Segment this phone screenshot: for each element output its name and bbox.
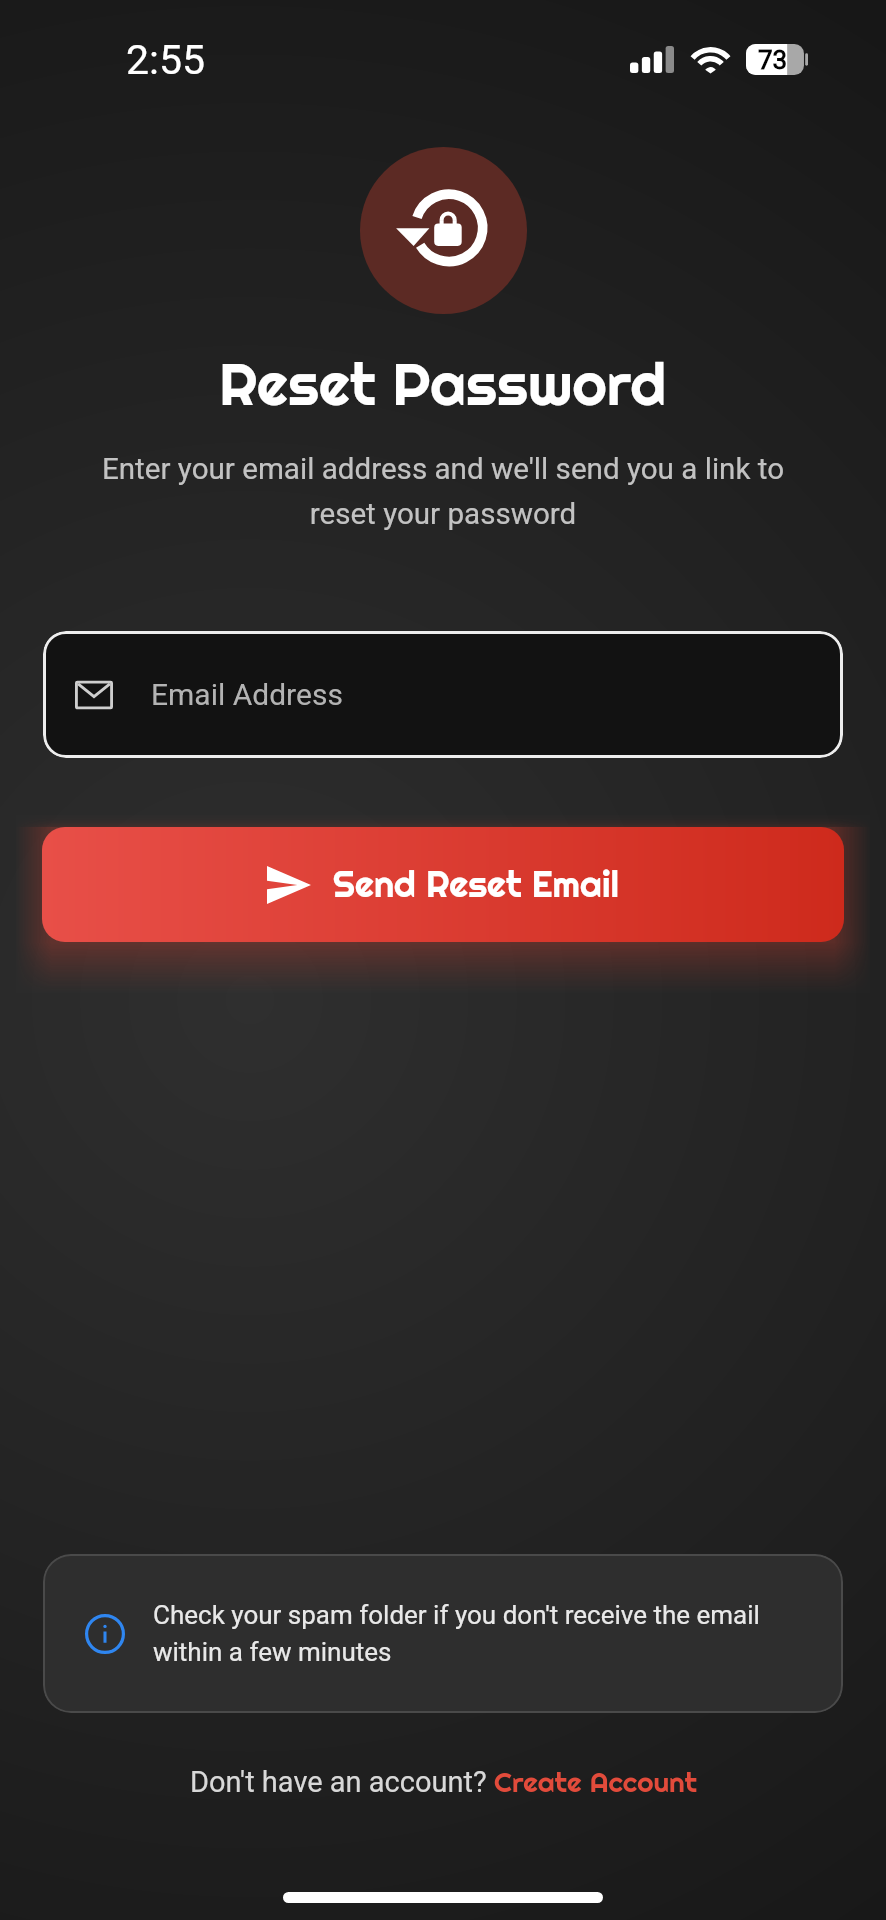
staticText: 73 — [758, 45, 788, 75]
staticText: Don't have an account? — [190, 1765, 494, 1799]
staticText: 2:55 — [126, 36, 206, 84]
button[interactable]: Send Reset Email — [42, 827, 844, 942]
staticText: Reset Password — [219, 347, 667, 420]
button[interactable]: Create Account — [494, 1764, 697, 1799]
button[interactable]: Email Address input — [43, 631, 843, 758]
staticText: Email Address — [151, 677, 343, 712]
staticText: Check your spam folder if you don't rece… — [153, 1600, 813, 1667]
staticText: Enter your email address and we'll send … — [93, 452, 793, 531]
staticText: Create Account — [494, 1764, 697, 1799]
staticText: Send Reset Email — [333, 862, 619, 907]
